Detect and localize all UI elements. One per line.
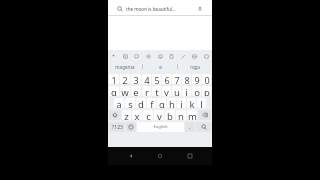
button[interactable]: e <box>131 86 141 96</box>
staticText: p <box>204 86 210 96</box>
button[interactable]: x <box>132 110 142 120</box>
button[interactable]: Back <box>124 149 138 163</box>
staticText: t <box>155 86 159 96</box>
staticText: l <box>200 98 203 108</box>
staticText: 9 <box>194 74 200 84</box>
button[interactable]: Shift <box>109 110 121 120</box>
staticText: w <box>121 86 129 96</box>
staticText: d <box>138 98 144 108</box>
button[interactable]: Home <box>153 149 167 163</box>
button[interactable]: 2 <box>120 74 130 84</box>
other: Voice search <box>197 6 203 12</box>
button[interactable]: h <box>167 98 176 108</box>
button[interactable]: 3 <box>131 74 141 84</box>
staticText: s <box>128 98 133 108</box>
staticText: b <box>167 110 173 120</box>
staticText: y <box>164 86 169 96</box>
button[interactable]: y <box>162 86 171 96</box>
button[interactable]: q <box>109 86 119 96</box>
staticText: k <box>189 98 195 108</box>
staticText: ngja <box>190 64 200 70</box>
button[interactable]: j <box>177 98 186 108</box>
staticText: 2 <box>122 74 128 84</box>
button[interactable]: Keyboard tool 5 <box>167 52 175 60</box>
staticText: 1 <box>111 74 117 84</box>
button[interactable]: n <box>176 110 186 120</box>
button[interactable]: ?123 <box>109 122 125 132</box>
button[interactable]: t <box>152 86 161 96</box>
staticText: u <box>174 86 180 96</box>
button[interactable]: r <box>142 86 151 96</box>
staticText: 8 <box>184 74 190 84</box>
staticText: 7 <box>174 74 180 84</box>
staticText: v <box>157 110 162 120</box>
button[interactable]: u <box>172 86 181 96</box>
button[interactable]: magenta <box>108 61 142 72</box>
staticText: magenta <box>115 64 135 70</box>
button[interactable]: w <box>120 86 130 96</box>
button[interactable]: 7 <box>172 74 181 84</box>
staticText: o <box>194 86 200 96</box>
button[interactable]: Space <box>137 122 184 132</box>
staticText: 0 <box>204 74 210 84</box>
button[interactable]: v <box>154 110 164 120</box>
button[interactable]: c <box>143 110 153 120</box>
button[interactable]: i <box>182 86 191 96</box>
staticText: , <box>189 124 191 131</box>
button[interactable]: Keyboard tool 1 <box>121 52 129 60</box>
staticText: h <box>169 98 175 108</box>
button[interactable]: Backspace <box>198 110 211 120</box>
staticText: r <box>145 86 149 96</box>
button[interactable]: f <box>147 98 156 108</box>
staticText: English <box>153 124 168 130</box>
button[interactable]: Expand toolbar <box>110 52 117 59</box>
button[interactable]: d <box>136 98 146 108</box>
button[interactable]: 5 <box>152 74 161 84</box>
button[interactable]: , <box>185 122 195 132</box>
button[interactable]: p <box>202 86 211 96</box>
button[interactable]: Keyboard tool 4 <box>156 52 164 60</box>
staticText: 6 <box>164 74 170 84</box>
button[interactable]: Recent apps <box>183 149 197 163</box>
button[interactable]: e <box>143 61 177 72</box>
button[interactable]: ngja <box>178 61 212 72</box>
staticText: e <box>159 64 162 70</box>
button[interactable]: 1 <box>109 74 119 84</box>
button[interactable]: 4 <box>142 74 151 84</box>
staticText: 4 <box>144 74 150 84</box>
staticText: a <box>116 98 122 108</box>
button[interactable]: s <box>125 98 135 108</box>
staticText: g <box>159 98 165 108</box>
staticText: x <box>134 110 140 120</box>
button[interactable]: Keyboard tool 3 <box>144 52 152 60</box>
other: Search <box>117 6 123 12</box>
button[interactable]: a <box>114 98 124 108</box>
button[interactable]: Keyboard tool 7 <box>190 52 198 60</box>
button[interactable]: Keyboard tool 6 <box>179 52 187 60</box>
staticText: z <box>124 110 129 120</box>
button[interactable]: 9 <box>192 74 201 84</box>
button[interactable]: z <box>122 110 131 120</box>
staticText: 3 <box>133 74 139 84</box>
button[interactable]: 8 <box>182 74 191 84</box>
button[interactable]: k <box>187 98 196 108</box>
staticText: f <box>150 98 154 108</box>
staticText: q <box>111 86 117 96</box>
button[interactable]: Emoji <box>126 122 136 132</box>
button[interactable]: 6 <box>162 74 171 84</box>
staticText: 5 <box>154 74 160 84</box>
button[interactable]: b <box>165 110 175 120</box>
staticText: n <box>178 110 184 120</box>
button[interactable]: l <box>197 98 206 108</box>
staticText: c <box>146 110 151 120</box>
button[interactable]: o <box>192 86 201 96</box>
button[interactable]: g <box>157 98 166 108</box>
button[interactable]: Search <box>196 122 211 132</box>
button[interactable]: 0 <box>202 74 211 84</box>
button[interactable]: Search <box>113 3 207 14</box>
staticText: m <box>188 110 197 120</box>
button[interactable]: Keyboard tool 2 <box>132 52 140 60</box>
button[interactable]: m <box>187 110 197 120</box>
staticText: ?123 <box>112 124 123 131</box>
button[interactable]: Keyboard tool 8 <box>202 52 210 60</box>
